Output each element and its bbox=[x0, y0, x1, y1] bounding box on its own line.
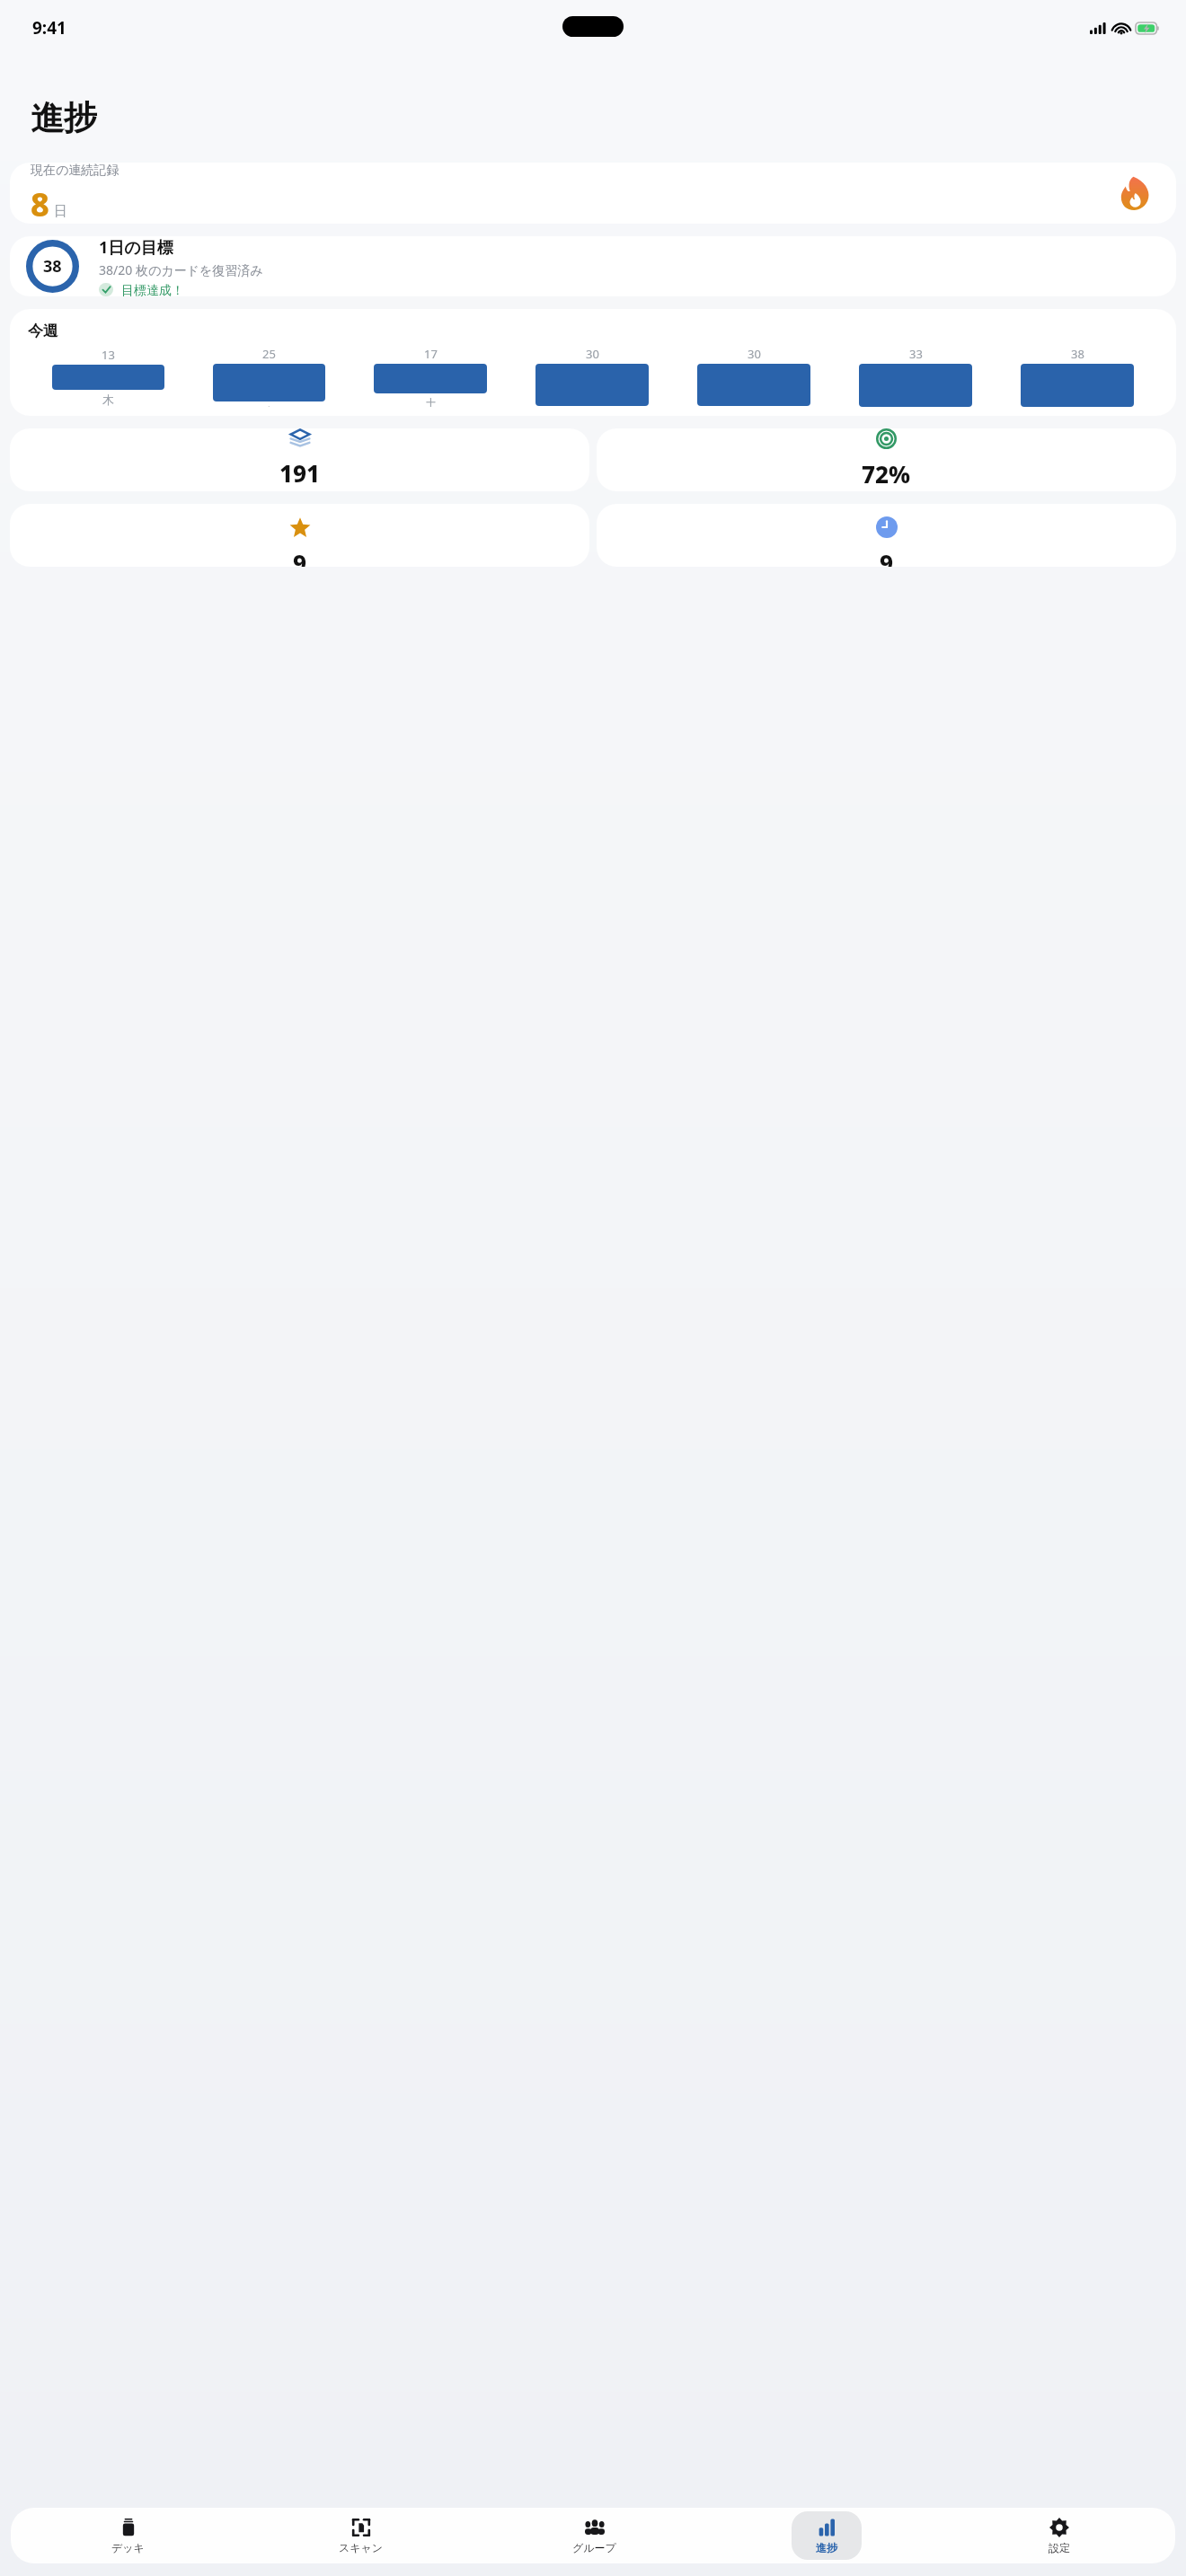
button[interactable]: 現在の連続記録 bbox=[10, 163, 1176, 224]
staticText: 1日の目標 bbox=[99, 236, 173, 259]
staticText: 38 bbox=[1071, 346, 1084, 362]
staticText: 設定 bbox=[1049, 2541, 1070, 2554]
other: 進捗 bbox=[817, 2518, 836, 2537]
staticText: 今週 bbox=[28, 322, 58, 340]
other: 設定 bbox=[1049, 2518, 1069, 2537]
staticText: 9:41 bbox=[32, 16, 66, 40]
button[interactable]: 進捗 bbox=[710, 2508, 943, 2563]
button[interactable]: 設定 bbox=[943, 2508, 1175, 2563]
staticText: 8 bbox=[31, 182, 49, 224]
staticText: 25 bbox=[262, 346, 276, 362]
button[interactable]: 9 bbox=[597, 504, 1176, 567]
staticText: デッキ bbox=[111, 2541, 145, 2554]
staticText: グループ bbox=[572, 2541, 616, 2554]
staticText: 17 bbox=[424, 346, 438, 362]
staticText: 72% bbox=[862, 458, 911, 490]
staticText: 33 bbox=[909, 346, 923, 362]
button[interactable]: スキャン bbox=[244, 2508, 477, 2563]
button[interactable]: 38 bbox=[10, 236, 1176, 296]
staticText: 目標達成！ bbox=[121, 283, 184, 296]
staticText: 現在の連続記録 bbox=[31, 163, 119, 179]
button[interactable]: グループ bbox=[477, 2508, 710, 2563]
button[interactable]: デッキ bbox=[11, 2508, 244, 2563]
staticText: 金 bbox=[263, 404, 275, 407]
staticText: 30 bbox=[586, 346, 599, 362]
staticText: 13 bbox=[102, 347, 115, 363]
other: グループ bbox=[585, 2518, 605, 2537]
staticText: 30 bbox=[748, 346, 761, 362]
staticText: 38/20 枚のカードを復習済み bbox=[99, 261, 263, 278]
staticText: 9 bbox=[880, 547, 894, 567]
button[interactable]: 72% bbox=[597, 428, 1176, 491]
other: スキャン bbox=[351, 2518, 371, 2537]
staticText: 日 bbox=[54, 203, 67, 220]
staticText: 土 bbox=[425, 396, 437, 407]
staticText: 進捗 bbox=[31, 97, 97, 139]
staticText: 9 bbox=[293, 547, 307, 567]
other: デッキ bbox=[119, 2518, 138, 2537]
staticText: 木 bbox=[102, 393, 114, 407]
button[interactable]: 9 bbox=[10, 504, 589, 567]
staticText: 191 bbox=[279, 457, 321, 489]
staticText: 進捗 bbox=[816, 2541, 837, 2554]
button[interactable]: 今週 bbox=[10, 309, 1176, 416]
button[interactable]: 191 bbox=[10, 428, 589, 491]
staticText: スキャン bbox=[339, 2541, 384, 2554]
staticText: 38 bbox=[43, 255, 62, 278]
